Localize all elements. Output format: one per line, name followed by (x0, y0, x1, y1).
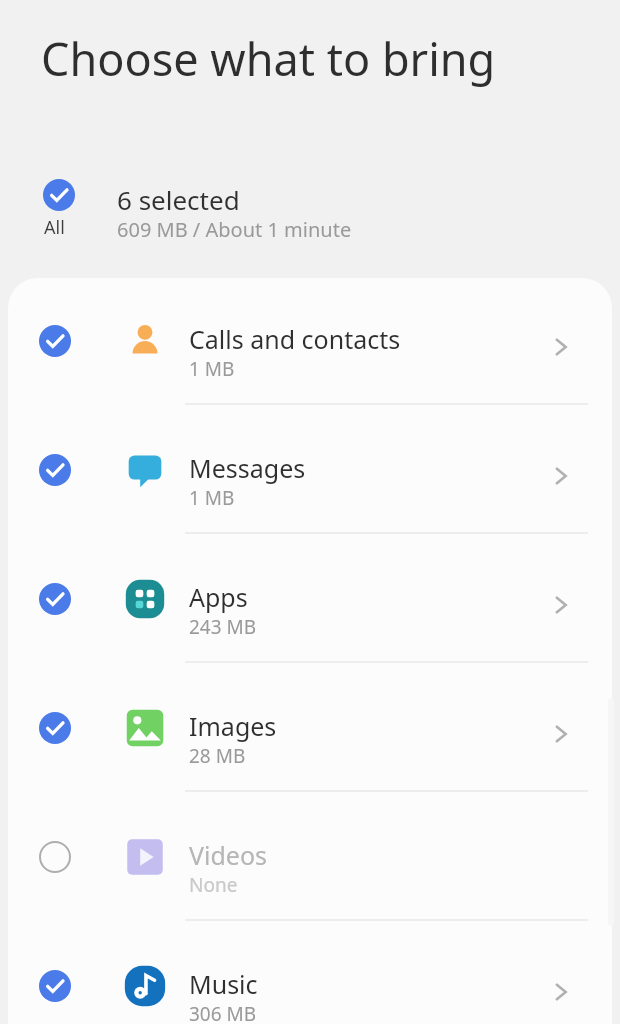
button[interactable]: Music checkbox (8, 922, 612, 1024)
staticText: 1 MB (189, 356, 235, 382)
button[interactable]: Apps checkbox (8, 535, 612, 664)
button[interactable]: Messages checkbox (8, 406, 612, 535)
button[interactable]: Open Calls and contacts (533, 319, 589, 375)
button[interactable]: Open Music (533, 964, 589, 1020)
staticText: 306 MB (189, 1001, 257, 1024)
button[interactable]: Open Messages (533, 448, 589, 504)
staticText: 1 MB (189, 485, 235, 511)
staticText: Music (189, 967, 258, 1001)
button[interactable]: Open Apps (533, 577, 589, 633)
staticText: 609 MB / About 1 minute (117, 216, 352, 243)
button[interactable]: Messages checkbox (35, 450, 75, 490)
button[interactable]: Apps checkbox (35, 579, 75, 619)
button[interactable]: Open Images (533, 706, 589, 762)
staticText: Calls and contacts (189, 322, 401, 356)
staticText: 6 selected (117, 182, 240, 217)
staticText: 243 MB (189, 614, 257, 640)
staticText: None (189, 872, 238, 898)
button[interactable]: Select all (36, 172, 82, 242)
staticText: All (44, 215, 65, 240)
staticText: Choose what to bring (41, 28, 496, 89)
staticText: Videos (189, 838, 268, 872)
button[interactable]: Videos checkbox (35, 837, 75, 877)
button[interactable]: Videos checkbox (8, 793, 612, 922)
button[interactable]: Images checkbox (35, 708, 75, 748)
staticText: Images (189, 709, 277, 743)
button[interactable]: Music checkbox (35, 966, 75, 1006)
button[interactable]: Calls and contacts checkbox (35, 321, 75, 361)
staticText: Apps (189, 580, 248, 614)
staticText: Messages (189, 451, 306, 485)
staticText: 28 MB (189, 743, 246, 769)
button[interactable]: Calls and contacts checkbox (8, 277, 612, 406)
button[interactable]: Images checkbox (8, 664, 612, 793)
